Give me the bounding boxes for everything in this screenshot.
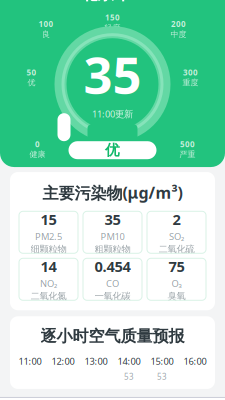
staticText: 200 <box>171 19 186 29</box>
staticText: 重度 <box>182 78 198 87</box>
staticText: 2 <box>172 210 180 229</box>
staticText: 13:00 <box>84 355 107 367</box>
staticText: 12:00 <box>51 355 74 367</box>
staticText: 14:00 <box>117 355 140 367</box>
staticText: 53 <box>124 371 134 382</box>
staticText: 300 <box>183 67 198 78</box>
staticText: 100 <box>38 19 53 29</box>
staticText: 优 <box>27 78 35 87</box>
staticText: 11:00更新 <box>92 108 133 120</box>
button[interactable]: 优 <box>68 141 156 159</box>
staticText: 北京市 <box>80 0 131 4</box>
button[interactable]: 0.454 <box>83 258 142 300</box>
staticText: 臭氧 <box>167 290 185 302</box>
staticText: 53 <box>157 371 167 382</box>
staticText: 75 <box>168 257 184 276</box>
staticText: CO <box>106 277 119 289</box>
staticText: 主要污染物(μg/m³) <box>42 182 182 203</box>
button[interactable]: 北京市 <box>72 0 152 7</box>
staticText: 粗颗粒物 <box>94 243 130 255</box>
staticText: 轻度 <box>104 23 120 33</box>
staticText: 二氧化硫 <box>158 243 194 255</box>
staticText: 16:00 <box>183 355 206 367</box>
staticText: SO₂ <box>169 230 184 242</box>
staticText: 健康 <box>29 149 45 159</box>
staticText: 0 <box>35 139 40 149</box>
staticText: 逐小时空气质量预报 <box>40 326 184 346</box>
staticText: 150 <box>105 12 120 23</box>
button[interactable]: 35 <box>83 211 142 253</box>
button[interactable]: 15 <box>19 211 78 253</box>
button[interactable]: 2 <box>147 211 206 253</box>
staticText: 15 <box>40 210 56 229</box>
staticText: 50 <box>26 67 36 78</box>
staticText: 中度 <box>170 29 186 39</box>
button[interactable]: 14 <box>19 258 78 300</box>
staticText: 500 <box>180 139 195 149</box>
staticText: 细颗粒物 <box>30 243 66 255</box>
staticText: 一氧化碳 <box>94 290 130 302</box>
staticText: O₃ <box>171 277 181 289</box>
button[interactable]: 75 <box>147 258 206 300</box>
staticText: 14 <box>40 257 56 276</box>
staticText: 二氧化氮 <box>30 290 66 302</box>
staticText: 35 <box>104 210 120 229</box>
staticText: 11:00 <box>18 355 41 367</box>
staticText: 良 <box>42 29 50 39</box>
staticText: NO₂ <box>40 277 57 289</box>
staticText: 15:00 <box>150 355 173 367</box>
staticText: 优 <box>105 141 120 159</box>
staticText: 0.454 <box>94 257 130 276</box>
staticText: 严重 <box>179 149 195 159</box>
staticText: 35 <box>83 40 141 108</box>
staticText: PM2.5 <box>35 230 62 242</box>
staticText: PM10 <box>100 230 124 242</box>
